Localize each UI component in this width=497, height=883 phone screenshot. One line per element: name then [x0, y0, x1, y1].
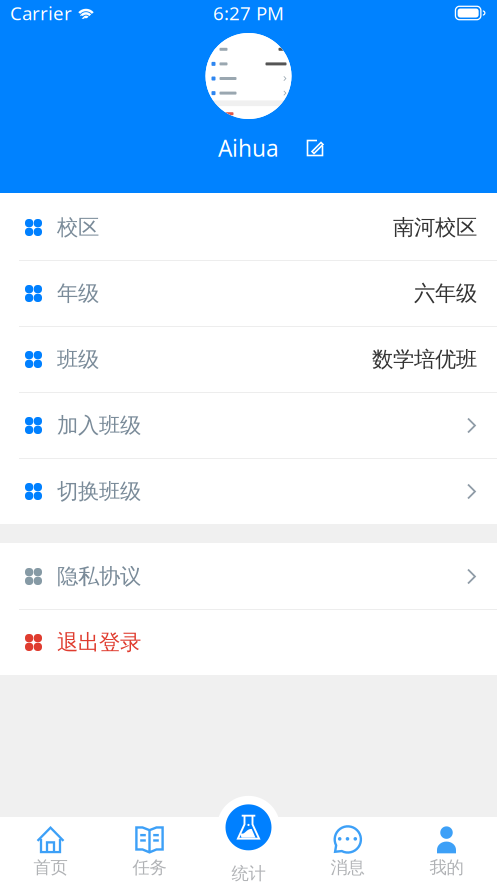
button[interactable]: 切换班级 — [0, 459, 497, 524]
staticText: 校区 — [57, 214, 99, 241]
staticText: 切换班级 — [57, 478, 141, 505]
staticText: 消息 — [330, 857, 364, 878]
button[interactable]: 任务 — [100, 817, 199, 883]
button[interactable]: 我的 — [397, 817, 496, 883]
staticText: 任务 — [132, 857, 166, 878]
staticText: 统计 — [231, 863, 265, 883]
button[interactable]: 统计 — [217, 796, 280, 883]
staticText: 南河校区 — [393, 214, 477, 241]
staticText: 退出登录 — [57, 629, 141, 656]
staticText: 加入班级 — [57, 412, 141, 439]
staticText: Aihua — [218, 133, 279, 163]
staticText: Carrier — [10, 1, 72, 25]
button[interactable]: 年级 — [0, 261, 497, 326]
button[interactable]: Edit name — [300, 133, 330, 163]
button[interactable]: 退出登录 — [0, 610, 497, 675]
staticText: 班级 — [57, 346, 99, 373]
staticText: 数学培优班 — [372, 346, 477, 373]
button[interactable]: 班级 — [0, 327, 497, 392]
button[interactable]: 校区 — [0, 195, 497, 260]
button[interactable]: 消息 — [298, 817, 397, 883]
staticText: 6:27 PM — [213, 1, 284, 25]
staticText: 我的 — [429, 857, 463, 878]
staticText: 六年级 — [414, 280, 477, 307]
button[interactable]: 加入班级 — [0, 393, 497, 458]
button[interactable]: 隐私协议 — [0, 544, 497, 609]
button[interactable]: 首页 — [1, 817, 100, 883]
staticText: 年级 — [57, 280, 99, 307]
staticText: 首页 — [33, 857, 67, 878]
staticText: 隐私协议 — [57, 563, 141, 590]
